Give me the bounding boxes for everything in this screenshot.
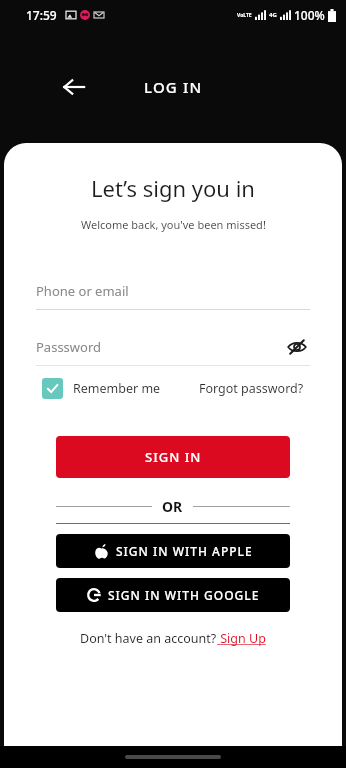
button[interactable]: SIGN IN <box>56 436 290 478</box>
staticText: Don't have an account? <box>80 630 217 647</box>
staticText: 100% <box>294 7 325 23</box>
staticText: LOG IN <box>144 77 203 97</box>
staticText: Sign Up <box>217 630 266 647</box>
staticText: Phone or email <box>36 282 129 300</box>
staticText: Passsword <box>36 338 102 356</box>
staticText: SIGN IN <box>145 448 202 466</box>
staticText: Remember me <box>73 380 161 397</box>
button[interactable]: Passsword <box>36 332 310 362</box>
staticText: Welcome back, you've been missed! <box>81 217 266 232</box>
button[interactable]: SIGN IN WITH APPLE <box>56 534 290 568</box>
staticText: Let’s sign you in <box>91 173 255 203</box>
staticText: VoLTE <box>237 12 252 19</box>
button[interactable]: Don't have an account? <box>80 630 266 647</box>
staticText: SIGN IN WITH APPLE <box>116 543 253 559</box>
staticText: SIGN IN WITH GOOGLE <box>108 587 260 603</box>
button[interactable]: Show password <box>284 334 310 360</box>
staticText: Forgot password? <box>199 380 304 397</box>
button[interactable]: SIGN IN WITH GOOGLE <box>56 578 290 612</box>
staticText: OR <box>162 497 183 516</box>
button[interactable]: Remember me <box>42 378 161 399</box>
button[interactable]: Forgot password? <box>199 380 304 397</box>
button[interactable]: Phone or email <box>36 276 310 306</box>
button[interactable]: Back <box>54 67 94 107</box>
staticText: 17:59 <box>26 7 57 23</box>
staticText: 4G <box>269 11 277 19</box>
